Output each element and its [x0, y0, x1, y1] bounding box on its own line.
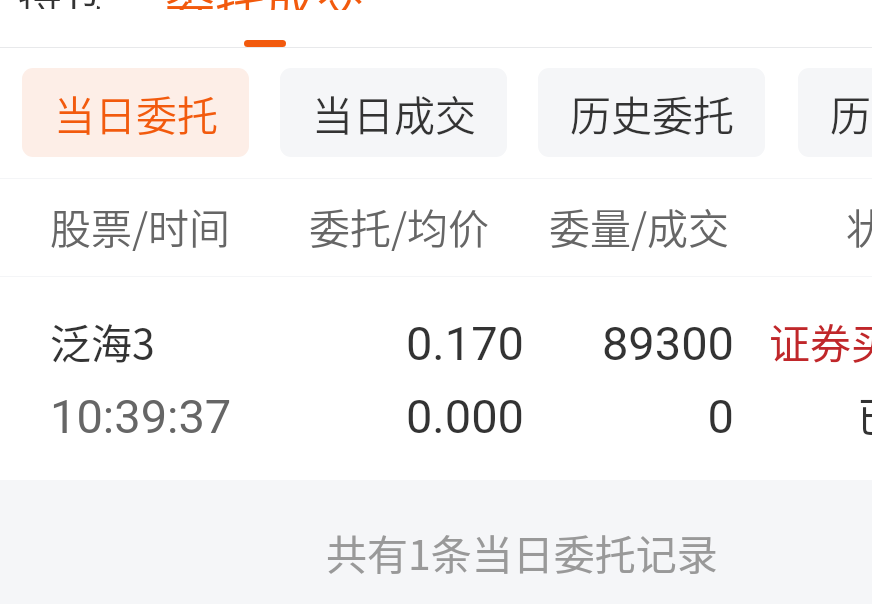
- button[interactable]: 委托/均价: [309, 196, 490, 255]
- staticText: 持仓: [18, 0, 106, 9]
- button[interactable]: 股票/时间: [50, 196, 231, 255]
- button[interactable]: 当日委托: [22, 68, 249, 157]
- button[interactable]: 当日成交: [280, 68, 507, 157]
- staticText: 10:39:37: [50, 389, 232, 444]
- staticText: 历史委托: [570, 83, 734, 142]
- button[interactable]: 历史成交: [798, 68, 872, 157]
- staticText: 历史成交: [830, 83, 872, 142]
- staticText: 89300: [544, 316, 734, 371]
- staticText: 已撤单: [857, 384, 872, 443]
- staticText: 当日委托: [54, 83, 218, 142]
- staticText: 股票/时间: [50, 196, 231, 255]
- staticText: 委托/均价: [309, 196, 490, 255]
- button[interactable]: 状态: [846, 196, 872, 255]
- button[interactable]: 泛海3: [0, 277, 872, 480]
- staticText: 0: [544, 389, 734, 444]
- staticText: 泛海3: [50, 311, 155, 370]
- staticText: 证券买入: [769, 311, 872, 370]
- staticText: 0.000: [304, 389, 524, 444]
- staticText: 委托成交: [165, 0, 365, 10]
- staticText: 0.170: [304, 316, 524, 371]
- staticText: 共有1条当日委托记录: [326, 522, 718, 581]
- staticText: 当日成交: [312, 83, 476, 142]
- staticText: 委量/成交: [549, 196, 730, 255]
- button[interactable]: 委量/成交: [549, 196, 730, 255]
- button[interactable]: 历史委托: [538, 68, 765, 157]
- staticText: 状态: [846, 196, 872, 255]
